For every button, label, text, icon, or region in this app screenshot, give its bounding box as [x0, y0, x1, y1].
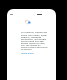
button[interactable]: Learn more [21, 52, 34, 55]
staticText: To continue, Google will share your name… [21, 31, 48, 51]
other: Google [25, 19, 31, 25]
